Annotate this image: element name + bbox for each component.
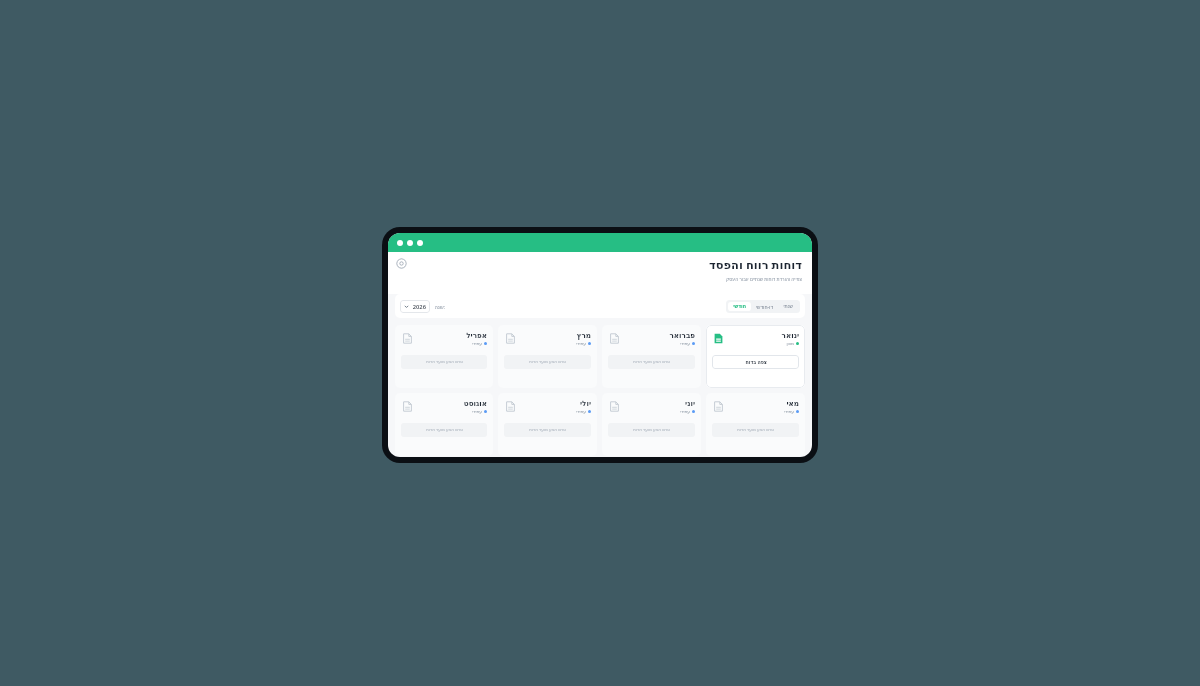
staticText: טרם הגיע מועד הדוח [426, 427, 463, 433]
button[interactable]: יולי [498, 393, 597, 456]
button[interactable]: שנתי [778, 302, 798, 311]
staticText: טרם הגיע מועד הדוח [633, 427, 670, 433]
staticText: עתידי [472, 409, 482, 414]
staticText: דוחות רווח והפסד [708, 257, 802, 273]
button[interactable]: חודשי [728, 302, 751, 311]
staticText: ינואר [781, 331, 799, 339]
button[interactable]: אפריל [395, 325, 493, 388]
staticText: יוני [685, 399, 695, 407]
button[interactable]: פברואר [602, 325, 701, 388]
staticText: עתידי [680, 409, 690, 414]
staticText: שנה: [434, 303, 445, 310]
staticText: עתידי [576, 341, 586, 346]
staticText: טרם הגיע מועד הדוח [529, 359, 566, 365]
staticText: עתידי [472, 341, 482, 346]
staticText: צפה בדוח [745, 359, 767, 366]
staticText: טרם הגיע מועד הדוח [737, 427, 774, 433]
staticText: טרם הגיע מועד הדוח [633, 359, 670, 365]
staticText: עתידי [680, 341, 690, 346]
staticText: צפייה והורדת דוחות שנתיים עבור העסק [726, 276, 802, 282]
button[interactable]: צפה בדוח [712, 355, 799, 369]
button[interactable]: יוני [602, 393, 701, 456]
staticText: עתידי [576, 409, 586, 414]
staticText: 2026 [412, 303, 426, 311]
staticText: דו-חודשי [756, 304, 773, 309]
staticText: טרם הגיע מועד הדוח [529, 427, 566, 433]
staticText: עתידי [784, 409, 794, 414]
button[interactable]: 2026 [400, 300, 430, 313]
staticText: מוכן [786, 341, 794, 346]
staticText: חודשי [733, 304, 746, 309]
staticText: טרם הגיע מועד הדוח [426, 359, 463, 365]
staticText: אוגוסט [463, 399, 487, 407]
button[interactable]: אוגוסט [395, 393, 493, 456]
staticText: יולי [579, 399, 591, 407]
staticText: אפריל [466, 331, 487, 339]
button[interactable]: History [396, 258, 407, 269]
button[interactable]: ינואר [706, 325, 805, 388]
button[interactable]: דו-חודשי [751, 302, 778, 311]
staticText: מאי [786, 399, 799, 407]
button[interactable]: מרץ [498, 325, 597, 388]
staticText: מרץ [576, 331, 591, 339]
button[interactable]: מאי [706, 393, 805, 456]
staticText: שנתי [783, 304, 793, 309]
staticText: פברואר [669, 331, 695, 339]
